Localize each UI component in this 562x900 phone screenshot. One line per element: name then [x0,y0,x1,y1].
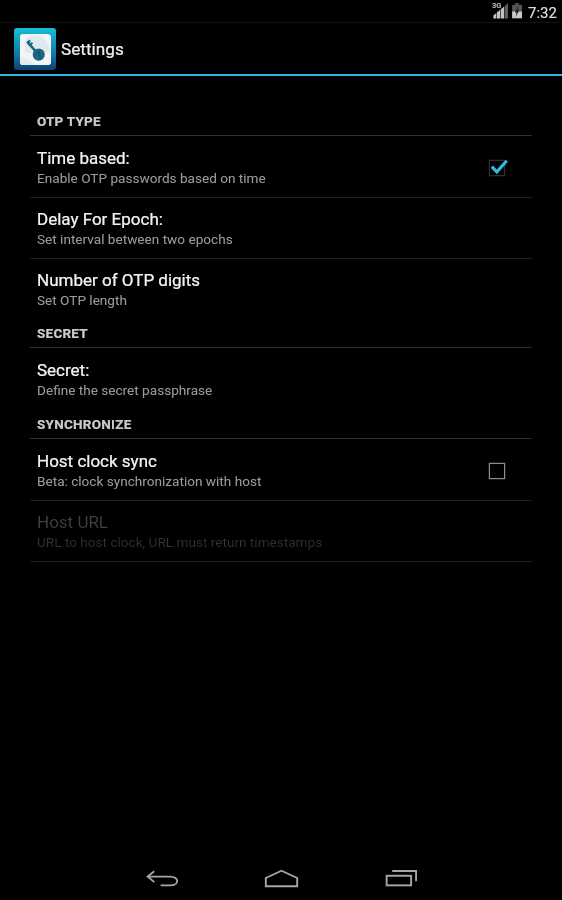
staticText: Settings [61,39,124,59]
staticText: URL to host clock, URL must return times… [37,534,323,550]
staticText: OTP TYPE [37,113,101,129]
staticText: Host clock sync [37,451,157,471]
staticText: Secret: [37,360,90,380]
button[interactable]: Number of OTP digits [0,258,562,319]
button[interactable]: Recent apps [347,854,455,900]
button[interactable]: Delay For Epoch: [0,197,562,258]
staticText: Set interval between two epochs [37,231,233,247]
staticText: Set OTP length [37,292,127,308]
button[interactable]: Home [227,854,335,900]
staticText: Beta: clock synchronization with host [37,473,262,489]
staticText: Enable OTP passwords based on time [37,170,266,186]
button[interactable]: Secret: [0,348,562,409]
button[interactable]: Enabled checkbox [475,146,519,190]
button[interactable]: Disabled checkbox [475,449,519,493]
staticText: Host URL [37,512,109,532]
button: Host URL [0,500,562,561]
button[interactable]: Host clock sync [0,439,562,500]
button[interactable]: Time based: [0,136,562,197]
staticText: Define the secret passphrase [37,382,213,398]
staticText: Time based: [37,148,130,168]
button[interactable]: Settings [0,23,562,74]
button[interactable]: Back [108,854,216,900]
staticText: Number of OTP digits [37,270,201,290]
staticText: 7:32 [528,4,557,22]
staticText: SECRET [37,325,88,341]
staticText: SYNCHRONIZE [37,416,132,432]
staticText: 3G [492,1,502,10]
staticText: Delay For Epoch: [37,209,163,229]
